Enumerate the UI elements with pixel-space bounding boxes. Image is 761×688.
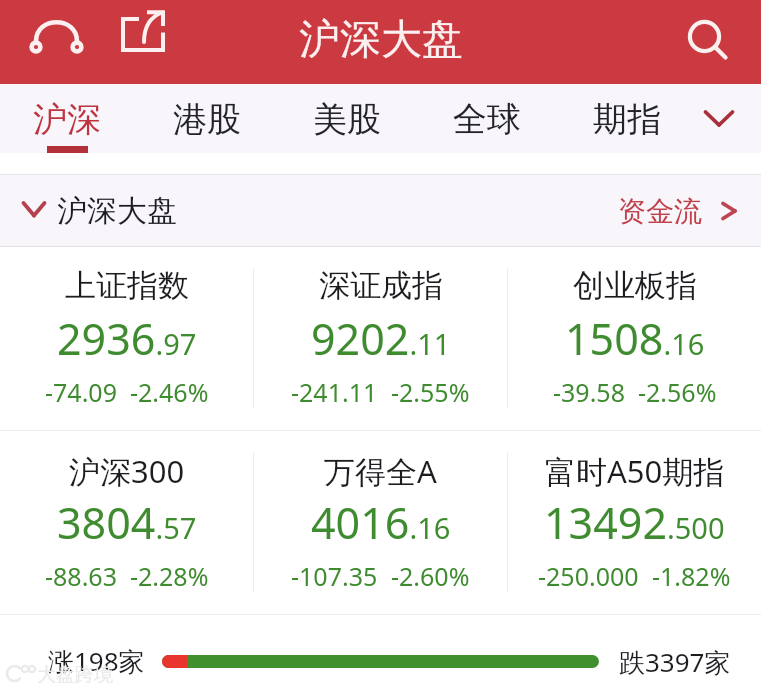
staticText: -2.56% [638, 375, 717, 409]
button[interactable]: 沪深 [0, 84, 137, 153]
button[interactable]: 美股 [277, 84, 417, 153]
staticText: 深证成指 [319, 266, 443, 305]
staticText: 涨198家 [48, 643, 145, 679]
staticText: -2.28% [130, 559, 209, 593]
staticText: 跌3397家 [619, 644, 731, 680]
button[interactable]: More tabs [689, 89, 749, 149]
staticText: 沪深 [33, 98, 101, 141]
button[interactable]: 沪深大盘 [0, 175, 761, 246]
button[interactable]: 富时A50期指 [508, 431, 761, 614]
button[interactable]: Share [116, 15, 180, 75]
staticText: -39.58 [553, 375, 625, 409]
staticText: 2936.97 [57, 309, 197, 368]
staticText: 13492.500 [544, 493, 725, 552]
staticText: -2.55% [391, 375, 470, 409]
staticText: 9202.11 [311, 309, 451, 368]
staticText: -2.46% [130, 375, 209, 409]
button[interactable]: 万得全A [254, 431, 507, 614]
staticText: -250.000 [538, 559, 639, 593]
staticText: 万得全A [324, 450, 437, 492]
staticText: -1.82% [652, 559, 731, 593]
staticText: 美股 [313, 98, 381, 141]
button[interactable]: 全球 [417, 84, 557, 153]
button[interactable]: Search [687, 20, 747, 80]
staticText: -74.09 [45, 375, 117, 409]
staticText: 全球 [453, 98, 521, 141]
staticText: -88.63 [45, 559, 117, 593]
button[interactable]: Listen [21, 10, 91, 74]
staticText: 资金流 [618, 194, 702, 229]
staticText: 1508.16 [565, 309, 705, 368]
staticText: 沪深300 [69, 450, 185, 492]
staticText: 上证指数 [65, 266, 189, 305]
staticText: 期指 [593, 98, 661, 141]
staticText: -241.11 [291, 375, 378, 409]
staticText: 创业板指 [573, 266, 697, 305]
staticText: 港股 [173, 98, 241, 141]
button[interactable]: 上证指数 [0, 247, 253, 430]
staticText: -2.60% [391, 559, 470, 593]
button[interactable]: 期指 [557, 84, 697, 153]
button[interactable]: 沪深300 [0, 431, 253, 614]
staticText: 沪深大盘 [57, 192, 177, 230]
button[interactable]: 深证成指 [254, 247, 507, 430]
staticText: 3804.57 [57, 493, 197, 552]
staticText: 4016.16 [311, 493, 451, 552]
button[interactable]: 港股 [137, 84, 277, 153]
staticText: -107.35 [291, 559, 378, 593]
button[interactable]: 创业板指 [508, 247, 761, 430]
staticText: 沪深大盘 [299, 14, 463, 66]
staticText: 富时A50期指 [545, 450, 725, 492]
staticText: 大盘跨境 [37, 663, 113, 687]
